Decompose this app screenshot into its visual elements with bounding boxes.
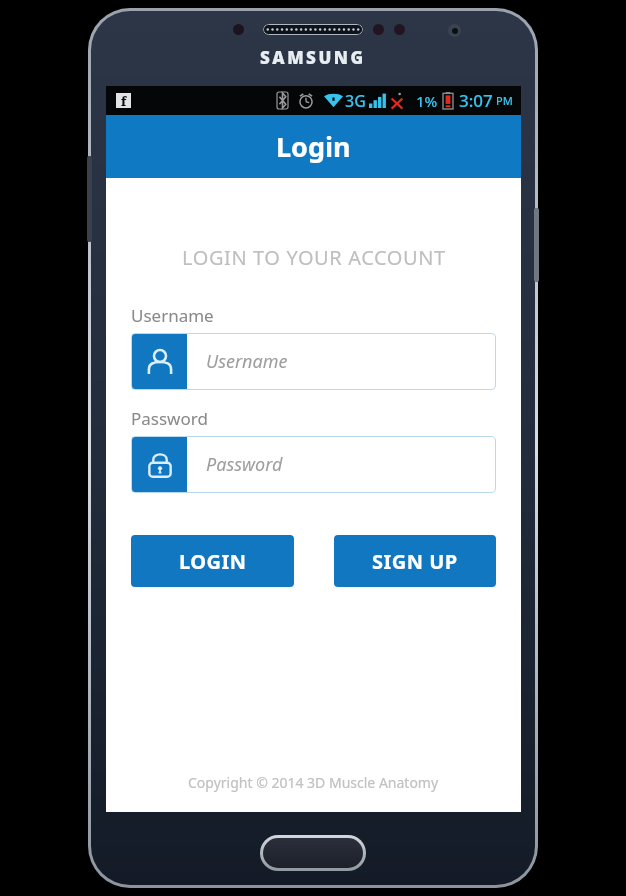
- staticText: 3G: [345, 90, 366, 112]
- button[interactable]: LOGIN: [131, 535, 294, 587]
- staticText: SIGN UP: [372, 548, 458, 575]
- staticText: 1%: [416, 91, 438, 111]
- staticText: LOGIN TO YOUR ACCOUNT: [182, 244, 446, 271]
- staticText: 3:07: [459, 89, 493, 112]
- staticText: f: [121, 93, 127, 108]
- staticText: Copyright © 2014 3D Muscle Anatomy: [188, 773, 439, 792]
- button[interactable]: Username: [131, 333, 496, 390]
- staticText: Password: [131, 407, 208, 430]
- button[interactable]: Home: [260, 835, 366, 871]
- button[interactable]: Password: [131, 436, 496, 493]
- staticText: Username: [131, 304, 214, 327]
- staticText: LOGIN: [179, 548, 247, 575]
- staticText: PM: [496, 93, 513, 108]
- staticText: SAMSUNG: [260, 46, 366, 69]
- staticText: Username: [206, 349, 288, 374]
- button[interactable]: SIGN UP: [334, 535, 496, 587]
- staticText: Login: [276, 128, 351, 165]
- staticText: Password: [206, 452, 283, 477]
